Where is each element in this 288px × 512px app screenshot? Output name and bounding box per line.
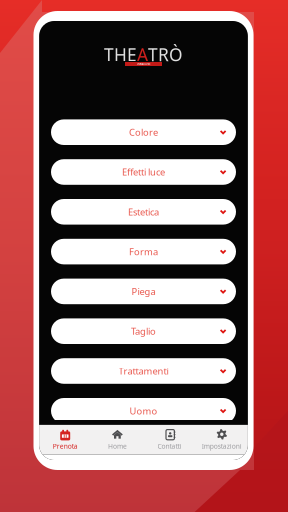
- staticText: Uomo: [129, 405, 157, 417]
- button[interactable]: Colore: [51, 119, 236, 145]
- button[interactable]: Contatti: [143, 425, 196, 454]
- button[interactable]: Effetti luce: [51, 159, 236, 185]
- staticText: Impostazioni: [202, 442, 242, 451]
- button[interactable]: Home: [91, 425, 143, 454]
- staticText: Home: [108, 442, 127, 451]
- staticText: Forma: [129, 245, 158, 258]
- button[interactable]: Trattamenti: [51, 358, 236, 384]
- button[interactable]: Piega: [51, 279, 236, 304]
- button[interactable]: Impostazioni: [196, 425, 248, 454]
- staticText: IMMAGINE: [137, 62, 150, 66]
- button[interactable]: Uomo: [51, 398, 236, 424]
- staticText: Taglio: [131, 325, 156, 337]
- staticText: Estetica: [128, 206, 159, 218]
- staticText: Effetti luce: [122, 166, 165, 178]
- staticText: THE: [104, 43, 137, 66]
- staticText: Piega: [131, 285, 155, 298]
- staticText: A: [137, 43, 148, 66]
- button[interactable]: Prenota: [39, 425, 91, 454]
- staticText: Colore: [129, 126, 158, 138]
- button[interactable]: Estetica: [51, 199, 236, 225]
- button[interactable]: Taglio: [51, 318, 236, 344]
- button[interactable]: Forma: [51, 239, 236, 264]
- staticText: TRÒ: [148, 43, 183, 66]
- staticText: Trattamenti: [118, 365, 168, 377]
- staticText: Contatti: [158, 442, 182, 451]
- staticText: Prenota: [53, 442, 78, 451]
